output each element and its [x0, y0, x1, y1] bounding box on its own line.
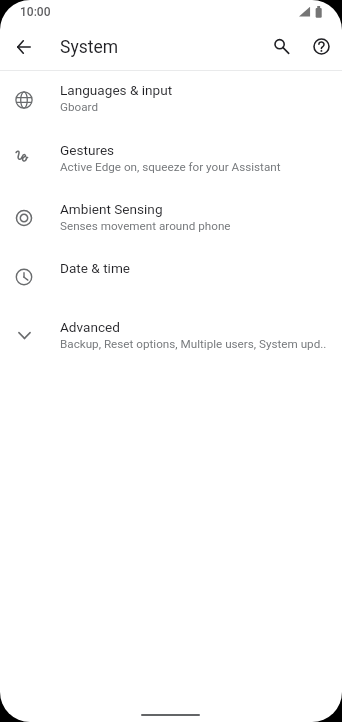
button[interactable]: Search settings — [261, 26, 302, 67]
staticText: Active Edge on, squeeze for your Assista… — [60, 160, 281, 174]
button[interactable]: Ambient Sensing — [0, 189, 342, 248]
staticText: Ambient Sensing — [60, 201, 163, 217]
other: Mobile signal — [299, 6, 311, 18]
staticText: Gestures — [60, 142, 115, 158]
button[interactable]: Navigate up — [3, 26, 44, 67]
button[interactable]: Help and feedback — [301, 26, 342, 67]
staticText: System — [60, 37, 119, 58]
staticText: Languages & input — [60, 82, 173, 98]
button[interactable]: Gestures — [0, 130, 342, 189]
staticText: Advanced — [60, 319, 120, 335]
staticText: Date & time — [60, 260, 131, 276]
button[interactable]: Date & time — [0, 248, 342, 307]
other: Battery — [315, 6, 323, 18]
button[interactable]: Advanced — [0, 307, 342, 366]
staticText: Backup, Reset options, Multiple users, S… — [60, 337, 327, 351]
staticText: 10:00 — [20, 5, 51, 19]
button[interactable]: Languages & input — [0, 70, 342, 129]
staticText: Senses movement around phone — [60, 219, 231, 233]
staticText: Gboard — [60, 100, 98, 114]
